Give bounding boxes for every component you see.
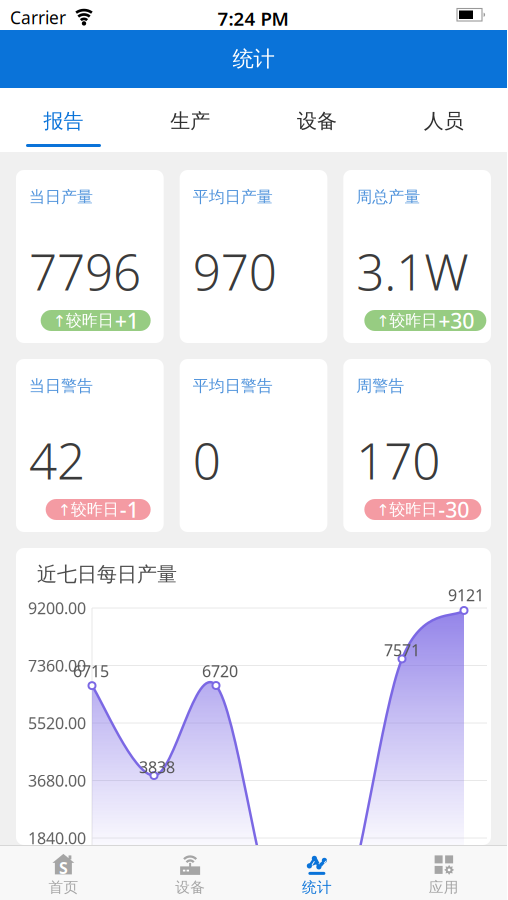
staticText: +30	[438, 306, 474, 335]
staticText: 近七日每日产量	[37, 562, 177, 587]
staticText: 9121	[448, 584, 484, 606]
staticText: ↑较昨日	[58, 500, 119, 519]
staticText: +1	[115, 306, 139, 335]
staticText: 生产	[170, 109, 210, 133]
staticText: 当日产量	[29, 187, 93, 207]
staticText: 7360.00	[28, 655, 86, 676]
staticText: 6720	[202, 660, 238, 682]
staticText: -30	[438, 495, 469, 524]
staticText: S	[59, 857, 68, 878]
staticText: 5520.00	[28, 712, 86, 734]
staticText: 970	[193, 239, 277, 304]
staticText: 统计	[302, 878, 332, 896]
button[interactable]: 设备	[253, 93, 380, 149]
staticText: 1840.00	[28, 827, 86, 849]
staticText: 0	[193, 428, 221, 493]
staticText: 当日警告	[29, 376, 93, 396]
button[interactable]: 报告	[0, 93, 127, 149]
staticText: ↑较昨日	[376, 311, 437, 330]
staticText: 7571	[384, 639, 420, 661]
staticText: 7:24 PM	[217, 6, 288, 31]
staticText: 报告	[43, 109, 83, 133]
button[interactable]: 生产	[127, 93, 254, 149]
staticText: ↑较昨日	[53, 311, 114, 330]
staticText: 平均日警告	[193, 376, 273, 396]
button[interactable]: 统计	[253, 849, 380, 896]
staticText: 7796	[29, 239, 141, 304]
staticText: 周总产量	[356, 187, 420, 207]
staticText: 170	[356, 428, 440, 493]
staticText: 9200.00	[28, 597, 86, 619]
button[interactable]: 应用	[380, 849, 507, 896]
staticText: 6715	[73, 660, 109, 682]
staticText: ↑较昨日	[376, 500, 437, 519]
staticText: 周警告	[356, 376, 404, 396]
staticText: 应用	[429, 878, 459, 896]
staticText: 3680.00	[28, 770, 86, 791]
staticText: 平均日产量	[193, 187, 273, 207]
staticText: 人员	[424, 109, 464, 133]
staticText: -1	[120, 495, 139, 524]
staticText: 设备	[297, 109, 337, 133]
staticText: Carrier	[10, 6, 66, 29]
button[interactable]: 人员	[380, 93, 507, 149]
button[interactable]: 设备	[127, 849, 254, 896]
staticText: 统计	[232, 46, 274, 72]
staticText: 3838	[139, 756, 175, 778]
staticText: 设备	[175, 878, 205, 896]
staticText: 42	[29, 428, 85, 493]
button[interactable]: S	[0, 849, 127, 896]
staticText: 首页	[48, 878, 78, 896]
staticText: 3.1W	[356, 239, 468, 304]
